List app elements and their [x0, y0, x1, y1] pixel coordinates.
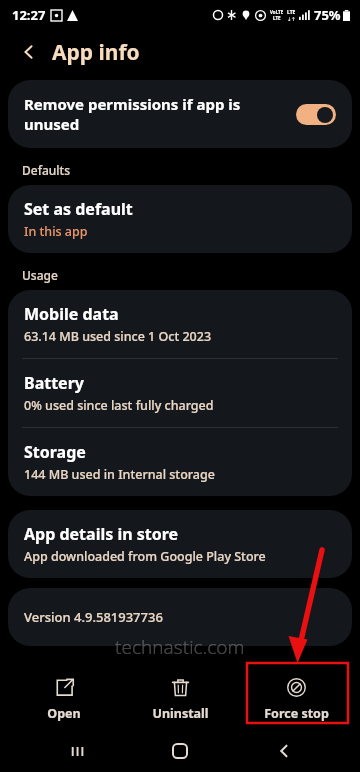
staticText: Defaults [22, 162, 71, 178]
staticText: 144 MB used in Internal storage [24, 466, 215, 483]
button[interactable]: Remove permissions if app is unused [8, 80, 352, 148]
button[interactable]: App details in store [8, 510, 352, 578]
button[interactable]: Mobile data [8, 290, 352, 358]
staticText: Remove permissions if app is unused [24, 94, 284, 134]
staticText: 12:27 [12, 6, 46, 24]
staticText: Open [47, 705, 81, 722]
staticText: App details in store [24, 523, 179, 545]
button[interactable]: Home [153, 730, 207, 772]
staticText: LTE [273, 15, 281, 21]
staticText: App info [52, 38, 140, 67]
button[interactable]: Battery [8, 359, 352, 427]
button[interactable]: Uninstall [128, 671, 232, 728]
staticText: 75% [314, 6, 341, 24]
staticText: Set as default [24, 198, 133, 220]
button[interactable]: Recents [50, 730, 104, 772]
button[interactable]: Storage [8, 428, 352, 496]
staticText: App downloaded from Google Play Store [24, 548, 266, 565]
other: Uninstall [171, 678, 190, 697]
staticText: Usage [22, 267, 58, 283]
button[interactable]: Open [12, 671, 116, 728]
staticText: LTE [287, 9, 296, 16]
staticText: VoLTE [270, 9, 284, 15]
button[interactable]: Remove permissions toggle [296, 104, 336, 125]
staticText: 63.14 MB used since 1 Oct 2023 [24, 328, 212, 345]
button[interactable]: Set as default [8, 185, 352, 253]
staticText: ↓↑ [287, 16, 296, 22]
staticText: Storage [24, 441, 86, 463]
staticText: In this app [24, 223, 88, 240]
staticText: Uninstall [152, 705, 209, 722]
button[interactable]: Force stop [244, 671, 348, 728]
staticText: Battery [24, 372, 84, 394]
button[interactable]: Version 4.9.581937736 [8, 588, 352, 646]
other: Open [55, 678, 74, 697]
staticText: technastic.com [115, 634, 245, 660]
staticText: Mobile data [24, 303, 119, 325]
button[interactable]: Back [257, 730, 311, 772]
other: Force stop [287, 678, 306, 697]
staticText: Force stop [264, 705, 329, 722]
staticText: Version 4.9.581937736 [24, 608, 163, 626]
staticText: 0% used since last fully charged [24, 397, 214, 414]
button[interactable]: Back [14, 37, 44, 67]
